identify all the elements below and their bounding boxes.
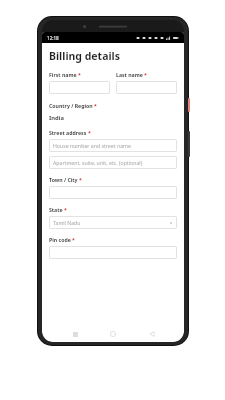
staticText: State bbox=[49, 206, 63, 213]
staticText: * bbox=[64, 206, 67, 213]
staticText: Country / Region bbox=[49, 102, 93, 109]
other: Volume button bbox=[188, 131, 190, 157]
button[interactable] bbox=[49, 81, 110, 94]
staticText: House number and street name bbox=[53, 142, 131, 149]
staticText: Apartment, suite, unit, etc. (optional) bbox=[53, 159, 143, 166]
staticText: 12:18 bbox=[47, 35, 59, 41]
staticText: * bbox=[88, 129, 91, 136]
button[interactable]: Home bbox=[107, 328, 119, 340]
button[interactable]: Recent apps bbox=[69, 328, 81, 340]
staticText: * bbox=[79, 176, 82, 183]
staticText: Tamil Nadu bbox=[53, 219, 81, 226]
staticText: Last name bbox=[116, 71, 143, 78]
other: Power button bbox=[188, 98, 190, 112]
staticText: * bbox=[144, 71, 147, 78]
staticText: Town / City bbox=[49, 176, 78, 183]
button[interactable] bbox=[49, 186, 177, 199]
staticText: Street address bbox=[49, 129, 87, 136]
button[interactable]: Apartment, suite, unit, etc. (optional) bbox=[49, 156, 177, 169]
button[interactable]: House number and street name bbox=[49, 139, 177, 152]
button[interactable]: Tamil Nadu bbox=[49, 216, 177, 229]
button[interactable] bbox=[49, 246, 177, 259]
staticText: * bbox=[94, 102, 97, 109]
staticText: * bbox=[78, 71, 81, 78]
staticText: Billing details bbox=[49, 49, 121, 63]
staticText: India bbox=[49, 114, 64, 122]
staticText: First name bbox=[49, 71, 77, 78]
staticText: * bbox=[72, 236, 75, 243]
button[interactable]: Back bbox=[146, 328, 158, 340]
staticText: Pin code bbox=[49, 236, 71, 243]
button[interactable] bbox=[116, 81, 177, 94]
